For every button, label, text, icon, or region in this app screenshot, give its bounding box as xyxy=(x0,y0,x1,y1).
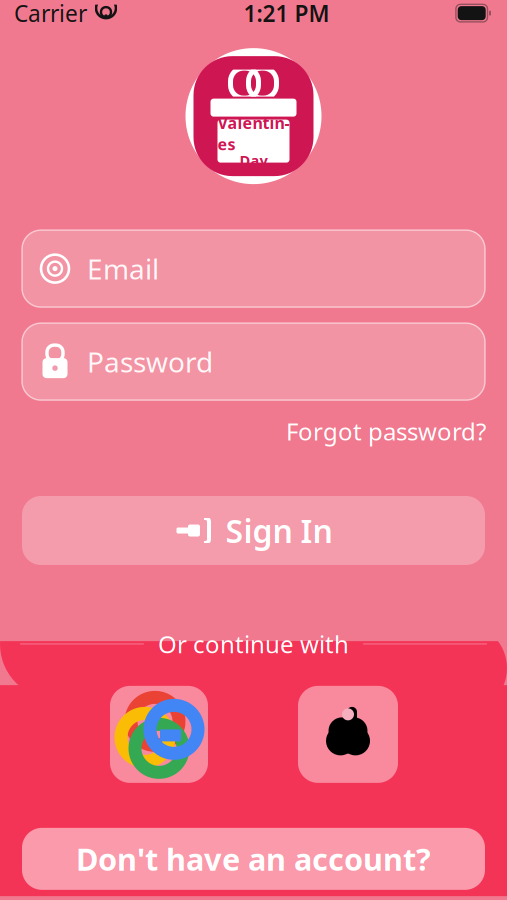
staticText: Password xyxy=(87,343,213,380)
button[interactable]: Continue with Apple xyxy=(298,686,398,783)
staticText: 1:21 PM xyxy=(243,0,329,28)
staticText: Email xyxy=(87,250,159,287)
staticText: Valentines xyxy=(217,112,289,155)
button[interactable]: Email xyxy=(22,230,485,307)
button[interactable]: Password xyxy=(22,323,485,400)
staticText: Carrier xyxy=(14,0,87,28)
button[interactable]: Forgot password? xyxy=(286,411,486,451)
button[interactable]: Continue with Google xyxy=(110,686,208,783)
staticText: Day xyxy=(239,151,267,170)
staticText: Don't have an account? xyxy=(76,838,431,879)
staticText: Forgot password? xyxy=(286,415,486,447)
staticText: Or continue with xyxy=(158,628,349,660)
button[interactable]: Don't have an account? xyxy=(22,828,485,890)
staticText: Sign In xyxy=(225,509,332,552)
button[interactable]: Sign In xyxy=(22,496,485,565)
